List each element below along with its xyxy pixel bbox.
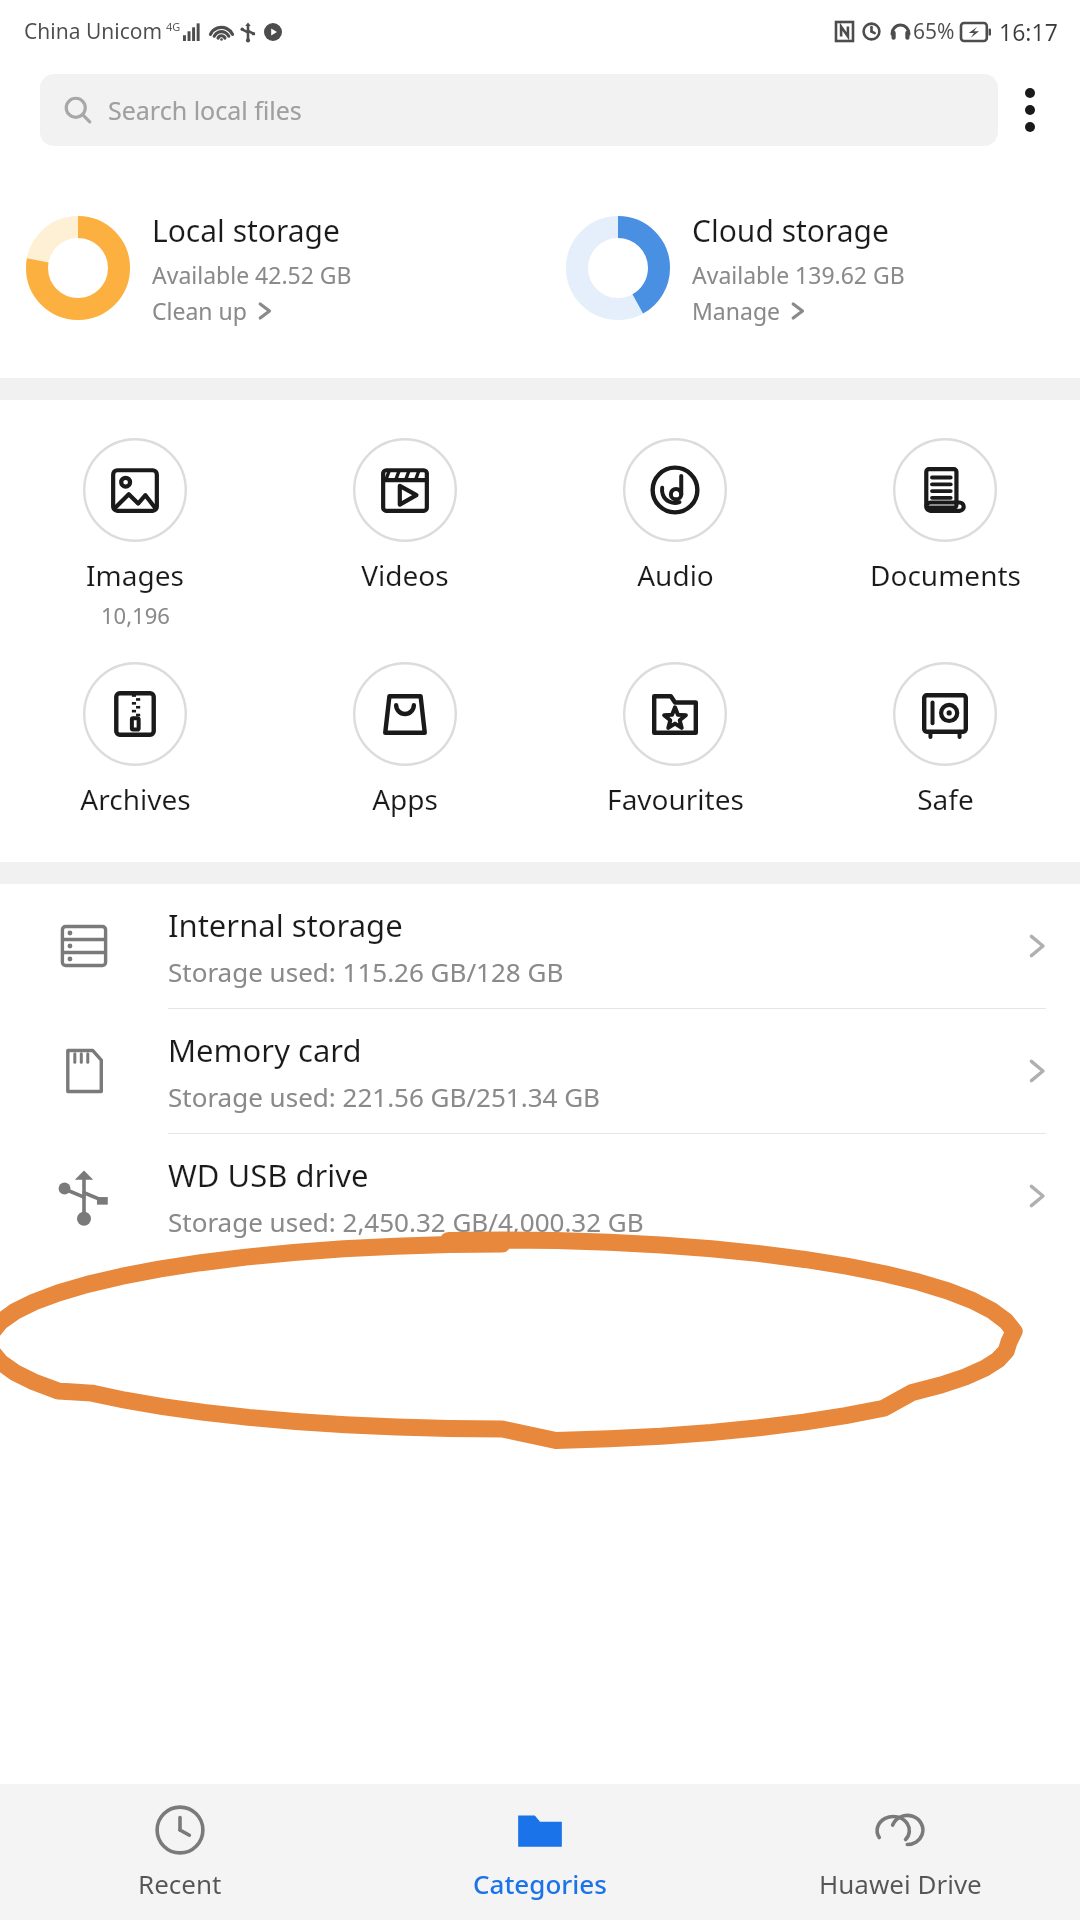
button[interactable]: Images [0, 434, 270, 634]
staticText: Local storage [152, 210, 340, 251]
staticText: China Unicom [24, 17, 163, 46]
staticText: 16:17 [999, 16, 1058, 47]
button[interactable]: More options [998, 78, 1062, 142]
button[interactable]: Audio [540, 434, 810, 598]
button[interactable]: Recent [0, 1784, 360, 1920]
button[interactable]: Categories [360, 1784, 720, 1920]
staticText: Categories [473, 1866, 607, 1901]
staticText: Recent [138, 1866, 222, 1901]
staticText: Search local files [108, 93, 302, 127]
button[interactable]: Huawei Drive [720, 1784, 1080, 1920]
button[interactable]: Archives [0, 658, 270, 822]
button[interactable]: Favourites [540, 658, 810, 822]
button[interactable]: Search local files [40, 74, 998, 146]
button[interactable]: Internal storage [0, 884, 1080, 1008]
staticText: Storage used: 2,450.32 GB/4,000.32 GB [168, 1204, 644, 1239]
staticText: Safe [917, 780, 974, 818]
button[interactable]: Apps [270, 658, 540, 822]
staticText: Manage [692, 295, 780, 326]
staticText: Audio [637, 556, 714, 594]
button[interactable]: Documents [810, 434, 1080, 598]
staticText: Storage used: 115.26 GB/128 GB [168, 954, 564, 989]
staticText: Apps [372, 780, 438, 818]
staticText: Available 42.52 GB [152, 259, 352, 290]
staticText: 10,196 [101, 600, 170, 630]
button[interactable]: Safe [810, 658, 1080, 822]
staticText: Internal storage [168, 904, 403, 946]
staticText: Archives [80, 780, 191, 818]
staticText: Clean up [152, 295, 247, 326]
button[interactable]: Cloud storage [540, 158, 1080, 378]
staticText: Memory card [168, 1029, 362, 1071]
staticText: Images [86, 556, 184, 594]
button[interactable]: WD USB drive [0, 1134, 1080, 1258]
staticText: 65% [913, 17, 955, 46]
staticText: Favourites [607, 780, 744, 818]
button[interactable]: Memory card [0, 1009, 1080, 1133]
staticText: Cloud storage [692, 210, 889, 251]
staticText: 4G [166, 19, 181, 34]
staticText: WD USB drive [168, 1154, 369, 1196]
staticText: Huawei Drive [819, 1866, 982, 1901]
staticText: Videos [361, 556, 449, 594]
staticText: Documents [870, 556, 1021, 594]
button[interactable]: Local storage [0, 158, 540, 378]
staticText: Storage used: 221.56 GB/251.34 GB [168, 1079, 601, 1114]
staticText: Available 139.62 GB [692, 259, 905, 290]
button[interactable]: Videos [270, 434, 540, 598]
